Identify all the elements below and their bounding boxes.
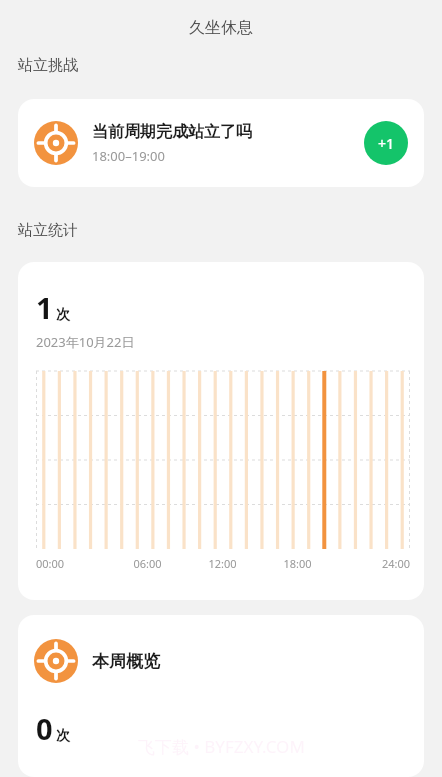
staticText: +1 [378,134,395,153]
staticText: 00:00 [36,556,110,571]
staticText: 飞下载 • BYFZXY.COM [138,735,305,758]
staticText: 2023年10月22日 [36,333,135,351]
staticText: 18:00 [260,556,335,571]
button[interactable]: Add one standing record [364,121,408,165]
staticText: 站立挑战 [18,56,78,75]
button[interactable]: 1 [18,262,424,600]
staticText: 本周概览 [92,651,160,672]
staticText: 06:00 [110,556,185,571]
staticText: 次 [56,727,70,745]
staticText: 站立统计 [18,221,78,240]
staticText: 久坐休息 [189,18,253,38]
button[interactable]: 本周概览 [18,615,424,777]
staticText: 24:00 [335,556,410,571]
staticText: 当前周期完成站立了吗 [92,122,252,142]
button[interactable]: 当前周期完成站立了吗 [18,99,424,187]
staticText: 1 [36,288,53,327]
staticText: 12:00 [185,556,260,571]
staticText: 次 [56,306,70,324]
staticText: 18:00–19:00 [92,147,165,165]
staticText: 0 [36,709,53,748]
